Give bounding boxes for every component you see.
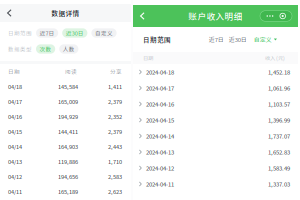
staticText: 2,443 [108,142,122,150]
staticText: 04/12 [8,172,22,180]
staticText: 2024-04-12 [146,164,174,172]
staticText: 2024-04-17 [146,84,174,92]
button[interactable]: 2024-04-11 [133,176,298,192]
staticText: 04/18 [8,82,22,90]
staticText: 1,710 [108,157,122,165]
staticText: 04/11 [8,187,22,195]
staticText: 164,903 [58,142,78,150]
staticText: 次数 [40,45,52,53]
staticText: 1,061.96 [268,84,290,92]
button[interactable]: 2024-04-17 [133,80,298,96]
button[interactable]: 返回 [0,4,18,22]
staticText: 194,656 [58,172,78,180]
staticText: 日期 [143,54,153,62]
staticText: 04/14 [8,142,22,150]
staticText: 04/15 [8,127,22,135]
staticText: 04/13 [8,157,22,165]
button[interactable]: 2024-04-14 [133,128,298,144]
staticText: 2,379 [108,127,122,135]
button[interactable]: 2024-04-15 [133,112,298,128]
staticText: 自定义 [95,29,113,37]
staticText: 165,009 [58,97,78,105]
staticText: 数据详情 [51,8,79,18]
staticText: 2024-04-18 [146,68,174,76]
button[interactable]: 近7日 [36,28,58,38]
staticText: 账户收入明细 [188,10,242,22]
button[interactable]: 2024-04-16 [133,96,298,112]
staticText: 收入 (元) [265,54,285,62]
staticText: 人数 [63,45,75,53]
staticText: 1,411 [108,82,122,90]
staticText: 1,103.57 [268,100,290,108]
staticText: 2024-04-11 [146,180,174,188]
staticText: 1,396.99 [268,116,290,124]
staticText: 194,929 [58,112,78,120]
button[interactable]: 2024-04-13 [133,144,298,160]
staticText: 144,411 [58,127,78,135]
staticText: 2,623 [108,187,122,195]
staticText: 日期范围 [8,29,32,37]
button[interactable]: 自定义 [91,28,117,38]
button[interactable]: 次数 [36,44,55,54]
button[interactable]: 人数 [59,44,78,54]
staticText: 近30日 [229,35,247,44]
staticText: 数据类型 [8,45,32,53]
staticText: 2,352 [108,112,122,120]
staticText: 近7日 [209,35,224,44]
staticText: 自定义 [254,35,272,44]
staticText: 2,379 [108,97,122,105]
staticText: 119,886 [58,157,78,165]
staticText: 2024-04-15 [146,116,174,124]
button[interactable]: 更多 [260,11,298,21]
button[interactable]: 近30日 [226,32,249,47]
staticText: 1,737.07 [268,132,290,140]
staticText: 1,337.03 [268,180,290,188]
staticText: 1,652.83 [268,148,290,156]
staticText: 145,584 [58,82,78,90]
staticText: 2024-04-13 [146,148,174,156]
button[interactable]: 2024-04-12 [133,160,298,176]
staticText: 日期范围 [143,35,171,44]
staticText: 04/16 [8,112,22,120]
button[interactable]: 自定义 [252,32,279,47]
staticText: 2,583 [108,172,122,180]
staticText: 日期 [8,67,20,75]
button[interactable]: 近7日 [206,32,226,47]
staticText: 04/17 [8,97,22,105]
staticText: 近7日 [40,29,55,37]
staticText: 1,452.18 [268,68,290,76]
button[interactable]: 返回 [133,5,151,27]
staticText: 2024-04-16 [146,100,174,108]
staticText: 阅读 [65,67,77,75]
staticText: 1,583.49 [268,164,290,172]
staticText: 2024-04-14 [146,132,174,140]
staticText: 近30日 [66,29,84,37]
staticText: 165,189 [58,187,78,195]
staticText: 分享 [110,67,122,75]
button[interactable]: 2024-04-18 [133,64,298,80]
button[interactable]: 近30日 [62,28,87,38]
